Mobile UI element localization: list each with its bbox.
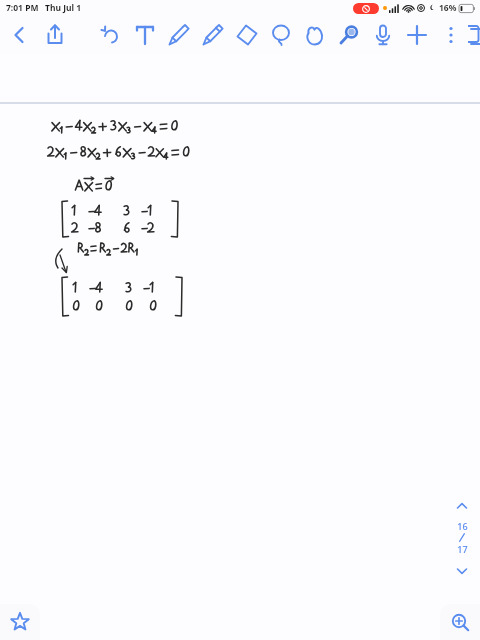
button[interactable]: Share bbox=[38, 18, 72, 52]
button[interactable]: Zoom in bbox=[445, 607, 475, 637]
button[interactable]: Zoom bbox=[440, 604, 480, 640]
button[interactable]: Pen bbox=[162, 18, 196, 52]
button[interactable]: Eraser bbox=[230, 18, 264, 52]
button[interactable]: Bookmark bbox=[0, 604, 40, 640]
button[interactable]: Microphone bbox=[366, 18, 400, 52]
button[interactable]: More options bbox=[434, 18, 468, 52]
button[interactable]: Next page bbox=[450, 559, 474, 583]
button[interactable]: Hand tool bbox=[298, 18, 332, 52]
button[interactable]: Highlighter bbox=[196, 18, 230, 52]
button[interactable]: Previous page bbox=[450, 494, 474, 518]
button[interactable]: Add page bbox=[400, 18, 434, 52]
button[interactable]: Undo bbox=[94, 18, 128, 52]
button[interactable]: Lasso bbox=[264, 18, 298, 52]
button[interactable]: Shape tool bbox=[332, 18, 366, 52]
staticText: 7:01 PM bbox=[6, 2, 39, 14]
staticText: 16 bbox=[457, 520, 468, 532]
staticText: 16% bbox=[439, 2, 457, 14]
staticText: Thu Jul 1 bbox=[45, 2, 82, 14]
staticText: 17 bbox=[457, 543, 468, 555]
button[interactable]: Pages bbox=[468, 18, 480, 52]
button[interactable]: Bookmark bbox=[5, 607, 35, 637]
button[interactable]: Back bbox=[2, 18, 36, 52]
button[interactable]: Text tool bbox=[128, 18, 162, 52]
